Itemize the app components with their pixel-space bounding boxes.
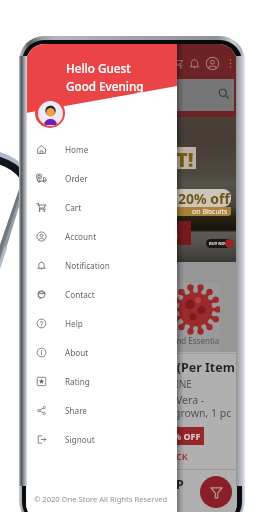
button[interactable]: Notifications [187,56,202,71]
button[interactable]: More options [223,56,237,70]
button[interactable]: BUY NOW [206,239,232,248]
button[interactable]: Notification [26,251,177,280]
staticText: Health and Essential [145,335,220,346]
staticText: Vera - (Per Item) [138,359,237,376]
staticText: Signout [65,434,95,445]
button[interactable]: Rating [26,367,177,396]
staticText: Account [65,231,97,242]
staticText: © 2020 One Store All Rights Reserved [34,494,168,504]
staticText: LINE [170,377,192,391]
staticText: Cart [65,202,82,213]
staticText: T! [176,146,194,168]
button[interactable]: Contact [26,280,177,309]
button[interactable]: Account [204,55,221,72]
staticText: Rating [65,376,90,387]
button[interactable]: Account [26,222,177,251]
staticText: Notification [65,260,110,271]
staticText: Good Evening [66,78,144,94]
button[interactable]: Help [26,309,177,338]
staticText: Vera - [176,393,205,407]
staticText: Hello Guest [66,60,131,76]
button[interactable]: Cart [26,193,177,222]
staticText: % OFF [173,430,201,442]
staticText: on - (P [142,476,184,493]
button[interactable]: Filter [200,476,232,508]
button[interactable]: About [26,338,177,367]
staticText: UP TO [153,195,178,205]
staticText: Contact [65,289,95,300]
button[interactable]: Home [26,135,177,164]
staticText: CK [176,450,188,462]
staticText: BUY NOW [209,241,229,246]
staticText: About [65,347,89,358]
button[interactable]: Search [30,79,234,111]
staticText: Help [65,318,83,329]
staticText: on Biscuits [192,207,228,216]
staticText: Home [65,144,89,155]
button[interactable]: Share [26,396,177,425]
staticText: Share [65,405,87,416]
button[interactable]: Signout [26,425,177,454]
button[interactable]: Health and Essential [141,283,220,352]
button[interactable]: Order [26,164,177,193]
staticText: LINE [142,491,164,505]
staticText: 20% off [178,189,230,207]
button[interactable]: Cart [170,56,185,71]
staticText: grown, 1 pc [174,406,232,420]
staticText: Order [65,173,88,184]
